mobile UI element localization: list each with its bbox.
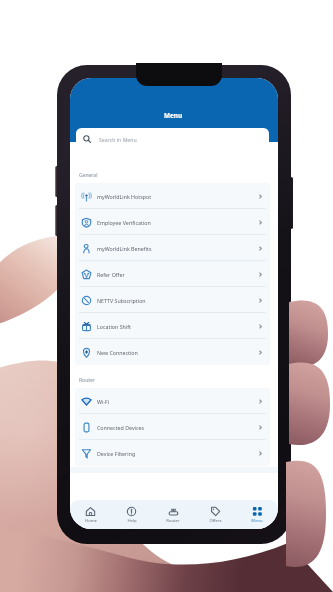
- button[interactable]: Employee Verification: [75, 209, 270, 235]
- staticText: Search in Menu: [99, 136, 137, 143]
- staticText: Router: [166, 518, 180, 524]
- button[interactable]: myWorldLink Hotspot: [75, 183, 270, 209]
- staticText: Offers: [209, 518, 222, 524]
- staticText: myWorldLink Benefits: [97, 245, 152, 252]
- staticText: Menu: [251, 518, 263, 524]
- staticText: New Connection: [97, 349, 138, 356]
- staticText: Home: [85, 518, 97, 524]
- button[interactable]: Refer Offer: [75, 261, 270, 287]
- button[interactable]: Help: [111, 500, 152, 529]
- button[interactable]: Router: [152, 500, 194, 529]
- button[interactable]: Home: [70, 500, 111, 529]
- staticText: Employee Verification: [97, 219, 151, 226]
- staticText: Menu: [164, 111, 183, 120]
- button[interactable]: Location Shift: [75, 313, 270, 339]
- button[interactable]: myWorldLink Benefits: [75, 235, 270, 261]
- button[interactable]: Connected Devices: [75, 414, 270, 440]
- staticText: General: [79, 172, 98, 179]
- button[interactable]: New Connection: [75, 339, 270, 365]
- staticText: Device Filtering: [97, 450, 136, 457]
- staticText: Location Shift: [97, 323, 131, 330]
- button[interactable]: Menu: [236, 500, 278, 529]
- button[interactable]: Offers: [194, 500, 236, 529]
- button[interactable]: Search in Menu: [76, 128, 269, 150]
- staticText: Refer Offer: [97, 271, 125, 278]
- staticText: Router: [79, 377, 95, 384]
- button[interactable]: Wi-Fi: [75, 388, 270, 414]
- staticText: Wi-Fi: [97, 398, 110, 405]
- button[interactable]: Device Filtering: [75, 440, 270, 466]
- staticText: NETTV Subscription: [97, 297, 146, 304]
- staticText: myWorldLink Hotspot: [97, 193, 152, 200]
- staticText: Help: [127, 518, 137, 524]
- staticText: Connected Devices: [97, 424, 145, 431]
- button[interactable]: NETTV Subscription: [75, 287, 270, 313]
